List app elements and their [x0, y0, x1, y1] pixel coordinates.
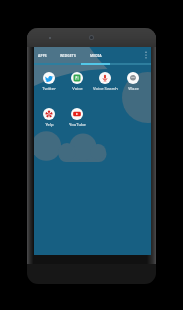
staticText: Voice — [72, 86, 83, 92]
button[interactable]: Voice — [63, 72, 91, 92]
button[interactable]: More options — [144, 51, 148, 59]
staticText: Voice Search — [93, 86, 118, 92]
staticText: MEDIA — [90, 53, 102, 57]
button[interactable]: MEDIA — [81, 47, 110, 63]
button[interactable]: Voice Search — [91, 72, 119, 92]
staticText: Yelp — [45, 122, 54, 128]
button[interactable]: WIDGETS — [54, 47, 82, 63]
button[interactable]: YouTube — [63, 108, 91, 128]
staticText: APPS — [38, 53, 47, 57]
button[interactable]: APPS — [34, 47, 50, 63]
staticText: YouTube — [69, 122, 86, 128]
staticText: WIDGETS — [60, 53, 76, 57]
staticText: Waze — [128, 86, 139, 92]
staticText: Twitter — [42, 86, 56, 92]
button[interactable]: Yelp — [35, 108, 63, 128]
button[interactable]: Twitter — [35, 72, 63, 92]
button[interactable]: Waze — [119, 72, 147, 92]
